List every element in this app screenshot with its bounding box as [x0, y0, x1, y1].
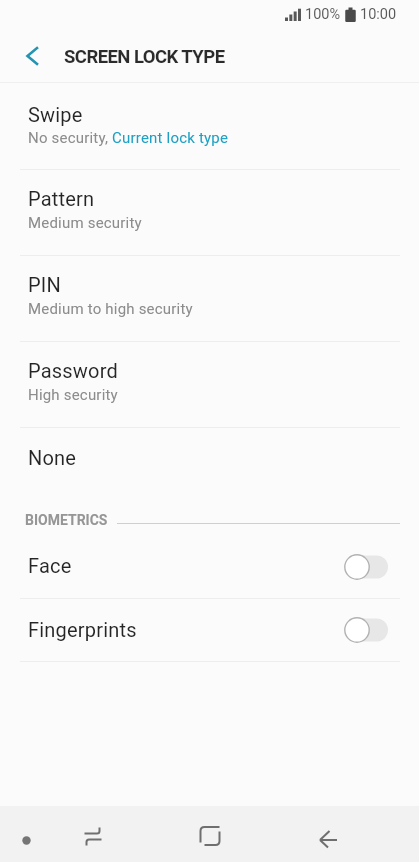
button[interactable]: None — [0, 428, 419, 490]
button[interactable]: Fingerprints — [0, 599, 419, 661]
staticText: Medium security — [28, 214, 142, 232]
button[interactable]: Swipe — [0, 83, 419, 169]
button[interactable]: Pattern — [0, 170, 419, 255]
button[interactable]: PIN — [0, 256, 419, 341]
staticText: BIOMETRICS — [25, 512, 108, 528]
staticText: None — [28, 446, 77, 469]
staticText: Password — [28, 359, 118, 382]
staticText: Medium to high security — [28, 300, 193, 318]
button[interactable]: Password — [0, 342, 419, 427]
staticText: 100% — [305, 6, 341, 23]
button[interactable] — [17, 831, 36, 850]
button[interactable] — [313, 821, 343, 851]
staticText: Swipe — [28, 103, 83, 126]
staticText: 10:00 — [360, 6, 397, 23]
button[interactable] — [14, 37, 50, 73]
staticText: High security — [28, 386, 118, 404]
staticText: Fingerprints — [28, 618, 137, 641]
button[interactable]: Face — [0, 535, 419, 598]
staticText: Face — [28, 554, 72, 577]
button[interactable] — [78, 821, 108, 851]
staticText: SCREEN LOCK TYPE — [64, 46, 225, 68]
staticText: PIN — [28, 273, 61, 296]
button[interactable] — [195, 821, 225, 851]
staticText: Pattern — [28, 187, 95, 210]
staticText: No security, Current lock type — [28, 129, 229, 147]
